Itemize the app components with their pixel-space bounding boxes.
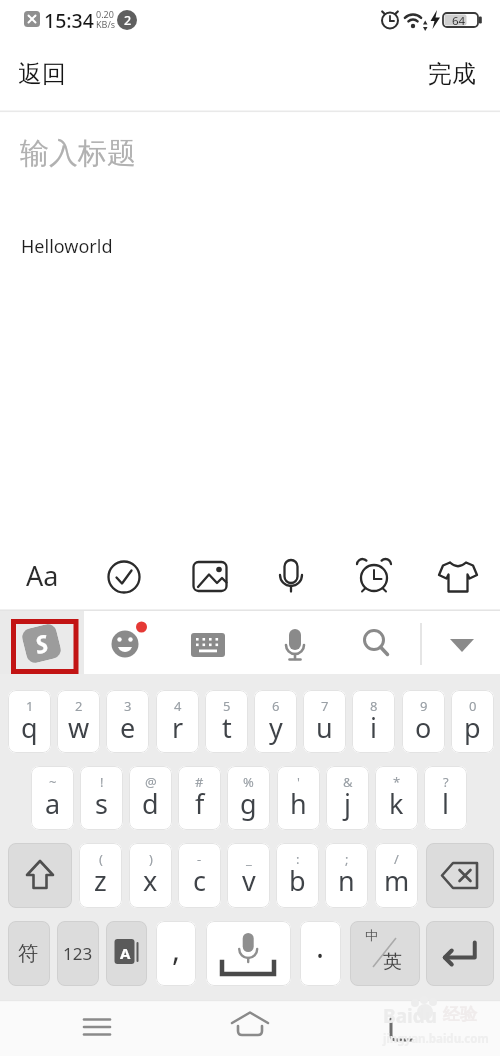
- button[interactable]: [186, 623, 230, 667]
- staticText: 输入标题: [20, 135, 136, 172]
- staticText: l: [442, 785, 449, 822]
- staticText: A: [120, 943, 131, 963]
- staticText: m: [384, 862, 410, 899]
- staticText: ): [149, 850, 153, 868]
- button[interactable]: Aa: [22, 555, 66, 599]
- staticText: Aa: [26, 557, 59, 594]
- staticText: ,: [172, 929, 181, 970]
- staticText: 9: [420, 697, 428, 715]
- staticText: ?: [443, 773, 449, 791]
- staticText: w: [68, 709, 90, 746]
- button[interactable]: 7: [303, 690, 346, 753]
- staticText: 15:34: [44, 7, 94, 34]
- staticText: 经验: [443, 1004, 477, 1025]
- button[interactable]: [273, 623, 317, 667]
- button[interactable]: [426, 843, 494, 908]
- staticText: 1: [26, 697, 34, 715]
- staticText: :: [296, 850, 300, 868]
- button[interactable]: [352, 555, 396, 599]
- button[interactable]: [269, 555, 313, 599]
- staticText: g: [240, 785, 257, 822]
- button[interactable]: 4: [156, 690, 199, 753]
- staticText: ~: [49, 773, 57, 791]
- button[interactable]: @: [129, 766, 172, 830]
- staticText: /: [394, 850, 399, 868]
- button[interactable]: #: [178, 766, 221, 830]
- staticText: 8: [370, 697, 378, 715]
- button[interactable]: ): [129, 843, 172, 908]
- button[interactable]: [102, 555, 146, 599]
- button[interactable]: 1: [8, 690, 51, 753]
- staticText: r: [172, 709, 184, 746]
- staticText: Helloworld: [21, 234, 113, 259]
- button[interactable]: [186, 555, 230, 599]
- button[interactable]: 8: [352, 690, 395, 753]
- staticText: @: [145, 773, 157, 791]
- button[interactable]: [440, 623, 484, 667]
- button[interactable]: 6: [254, 690, 297, 753]
- button[interactable]: _: [227, 843, 270, 908]
- button[interactable]: !: [80, 766, 123, 830]
- staticText: t: [222, 709, 232, 746]
- staticText: 4: [174, 697, 182, 715]
- staticText: 0: [469, 697, 477, 715]
- staticText: S: [31, 626, 52, 661]
- button[interactable]: 完成: [420, 54, 488, 94]
- button[interactable]: [75, 1005, 119, 1049]
- button[interactable]: [426, 921, 494, 986]
- staticText: h: [290, 785, 307, 822]
- button[interactable]: A: [106, 921, 147, 986]
- button[interactable]: [436, 555, 480, 599]
- button[interactable]: 3: [106, 690, 149, 753]
- button[interactable]: *: [375, 766, 418, 830]
- button[interactable]: ?: [424, 766, 467, 830]
- button[interactable]: ': [277, 766, 320, 830]
- button[interactable]: S: [20, 622, 63, 665]
- button[interactable]: /: [375, 843, 418, 908]
- button[interactable]: .: [300, 921, 341, 986]
- button[interactable]: -: [178, 843, 221, 908]
- button[interactable]: [206, 921, 291, 986]
- staticText: !: [100, 773, 104, 791]
- staticText: 6: [272, 697, 280, 715]
- button[interactable]: :: [276, 843, 319, 908]
- staticText: %: [243, 773, 254, 791]
- button[interactable]: 2: [57, 690, 100, 753]
- button[interactable]: 5: [205, 690, 248, 753]
- button[interactable]: &: [326, 766, 369, 830]
- staticText: j: [344, 785, 351, 822]
- staticText: z: [94, 862, 107, 899]
- staticText: i: [370, 709, 377, 746]
- staticText: 2: [75, 697, 83, 715]
- button[interactable]: (: [79, 843, 122, 908]
- staticText: _: [246, 850, 252, 868]
- button[interactable]: 0: [451, 690, 494, 753]
- staticText: .: [316, 926, 325, 967]
- staticText: 2: [124, 12, 132, 29]
- button[interactable]: 符: [8, 921, 50, 986]
- staticText: jingyan.baidu.com: [383, 1031, 489, 1047]
- button[interactable]: %: [227, 766, 270, 830]
- staticText: 123: [63, 942, 93, 965]
- staticText: d: [142, 785, 159, 822]
- button[interactable]: 9: [402, 690, 445, 753]
- staticText: y: [269, 709, 283, 746]
- button[interactable]: 123: [57, 921, 99, 986]
- button[interactable]: [103, 623, 147, 667]
- button[interactable]: [379, 1005, 423, 1049]
- button[interactable]: ,: [156, 921, 196, 986]
- button[interactable]: ~: [31, 766, 74, 830]
- button[interactable]: 返回: [10, 54, 78, 94]
- staticText: #: [195, 773, 204, 791]
- button[interactable]: 中: [350, 921, 420, 986]
- button[interactable]: [352, 623, 396, 667]
- staticText: p: [464, 709, 481, 746]
- staticText: q: [21, 709, 38, 746]
- staticText: 5: [223, 697, 231, 715]
- button[interactable]: [8, 843, 72, 908]
- button[interactable]: ;: [325, 843, 368, 908]
- staticText: KB/s: [96, 18, 116, 30]
- staticText: -: [197, 850, 202, 868]
- button[interactable]: [228, 1005, 272, 1049]
- staticText: 7: [321, 697, 329, 715]
